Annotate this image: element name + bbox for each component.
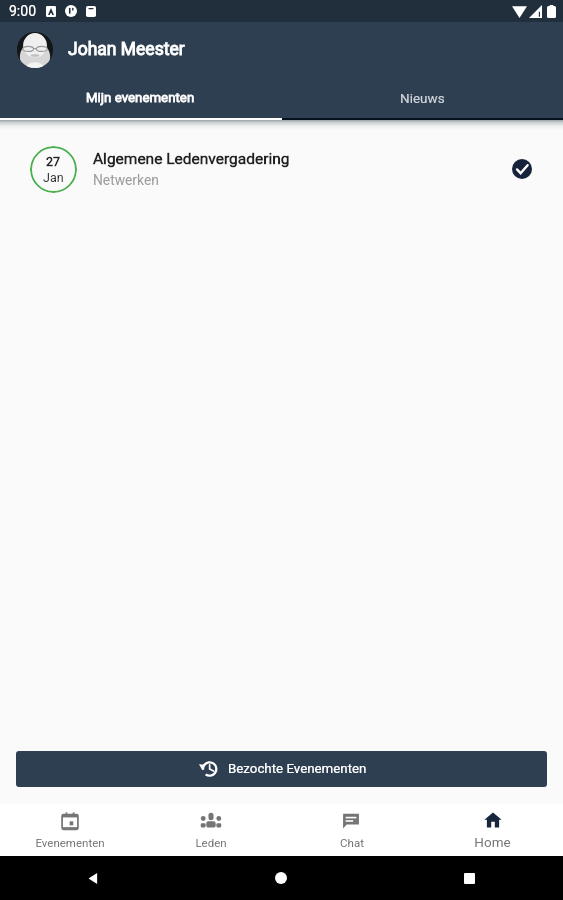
button[interactable]: Mijn evenementen [0, 77, 281, 118]
staticText: Chat [340, 836, 364, 849]
button[interactable]: Nieuws [281, 77, 563, 118]
staticText: Evenementen [35, 836, 105, 849]
staticText: Bezochte Evenementen [228, 761, 367, 777]
button[interactable]: Chat [281, 804, 422, 856]
staticText: 9:00 [9, 3, 36, 19]
staticText: Home [474, 834, 511, 850]
staticText: Netwerken [93, 172, 159, 188]
button[interactable]: 27 [0, 134, 563, 204]
other: Aangemeld [512, 159, 532, 179]
button[interactable]: Leden [140, 804, 281, 856]
staticText: Johan Meester [68, 39, 185, 60]
staticText: Jan [43, 170, 64, 185]
button[interactable]: Home [187, 856, 375, 900]
button[interactable]: Recents [375, 856, 563, 900]
staticText: Algemene Ledenvergadering [93, 150, 290, 168]
button[interactable]: Home [422, 804, 563, 856]
button[interactable]: Bezochte Evenementen [16, 751, 547, 787]
button[interactable]: Evenementen [0, 804, 140, 856]
staticText: Nieuws [400, 90, 445, 106]
staticText: 27 [46, 154, 61, 169]
staticText: Leden [195, 836, 227, 849]
button[interactable]: Back [0, 856, 187, 900]
staticText: Mijn evenementen [86, 90, 195, 106]
